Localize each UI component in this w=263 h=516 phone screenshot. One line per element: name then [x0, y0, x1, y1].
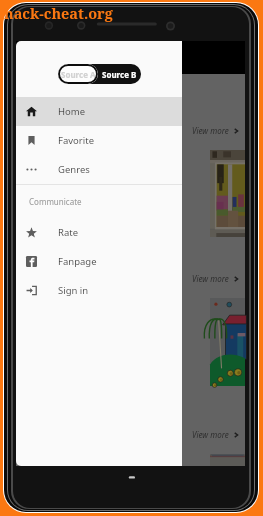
staticText: Rate — [58, 226, 79, 239]
staticText: View more — [192, 125, 229, 136]
button[interactable]: View more — [16, 125, 240, 136]
button[interactable]: Rate — [16, 218, 182, 247]
staticText: View more — [192, 429, 229, 440]
staticText: Source A — [61, 69, 96, 80]
button[interactable] — [210, 454, 245, 466]
button[interactable]: Fanpage — [16, 247, 182, 276]
button[interactable]: Source A — [58, 64, 98, 84]
staticText: Sign in — [58, 284, 89, 297]
staticText: View more — [192, 273, 229, 284]
staticText: Home — [58, 105, 86, 118]
staticText: Favorite — [58, 134, 94, 147]
staticText: Fanpage — [58, 255, 97, 268]
staticText: Source B — [102, 69, 137, 80]
staticText: Communicate — [29, 196, 82, 207]
button[interactable] — [210, 150, 245, 237]
staticText: hack-cheat.org — [4, 3, 113, 23]
staticText: Genres — [58, 163, 90, 176]
button[interactable] — [210, 298, 245, 386]
button[interactable]: Source B — [98, 64, 141, 84]
button[interactable]: View more — [16, 273, 240, 284]
button[interactable]: Genres — [16, 155, 182, 184]
button[interactable]: Home — [16, 97, 182, 126]
button[interactable]: Favorite — [16, 126, 182, 155]
button[interactable]: Sign in — [16, 276, 182, 305]
button[interactable]: View more — [16, 429, 240, 440]
